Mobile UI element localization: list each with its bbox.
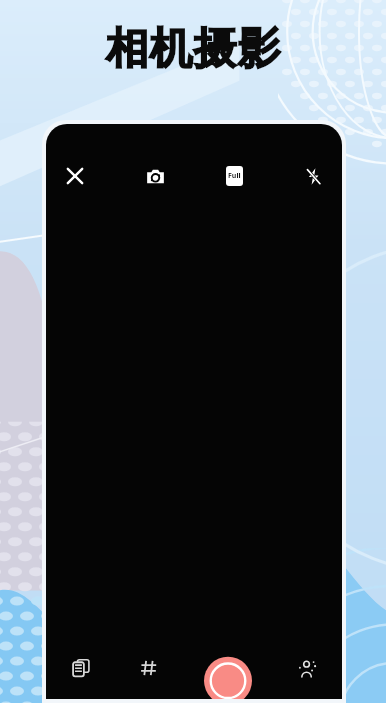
button[interactable]: Gallery xyxy=(64,651,98,685)
button[interactable]: Aspect ratio Full xyxy=(217,159,251,193)
staticText: 相机摄影 xyxy=(105,22,281,76)
button[interactable]: Shutter xyxy=(200,651,256,699)
button[interactable]: Grid xyxy=(132,651,166,685)
staticText: Full xyxy=(228,171,241,181)
button[interactable]: Beauty xyxy=(290,651,324,685)
button[interactable]: Switch camera xyxy=(138,159,172,193)
button[interactable]: Close xyxy=(58,159,92,193)
button[interactable]: Flash off xyxy=(296,159,330,193)
